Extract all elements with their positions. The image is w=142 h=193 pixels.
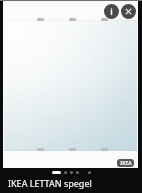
staticText: IKEA (120, 160, 132, 167)
button[interactable] (88, 171, 91, 174)
staticText: IKEA LETTAN spegel (8, 177, 92, 189)
button[interactable] (52, 171, 61, 174)
button[interactable] (76, 171, 79, 174)
button[interactable]: IKEA (117, 159, 134, 167)
button[interactable]: Close (121, 4, 136, 19)
button[interactable] (64, 171, 67, 174)
button[interactable]: Information (104, 4, 119, 19)
button[interactable] (70, 171, 73, 174)
